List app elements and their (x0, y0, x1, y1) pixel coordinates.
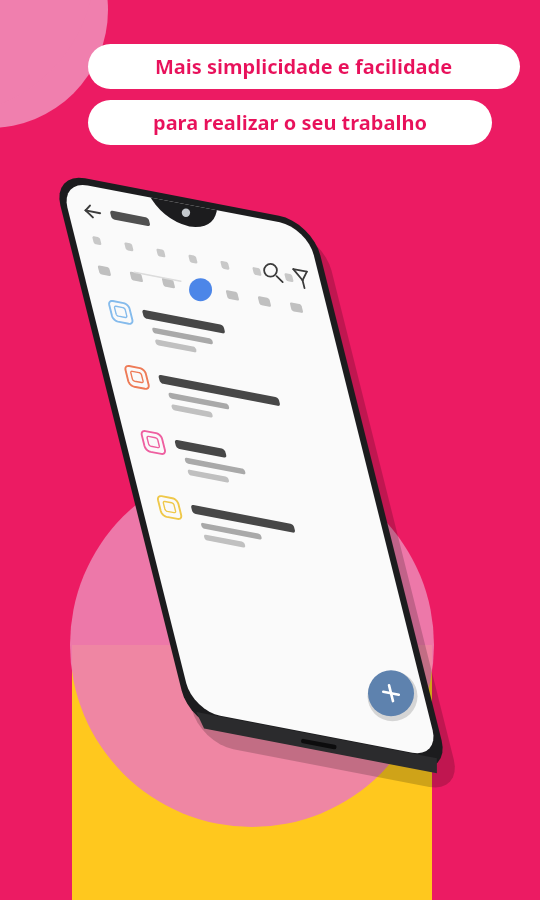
staticText: para realizar o seu trabalho (153, 109, 427, 136)
button[interactable]: para realizar o seu trabalho (88, 100, 492, 145)
staticText: Mais simplicidade e facilidade (155, 53, 453, 80)
button[interactable]: Mais simplicidade e facilidade (88, 44, 520, 89)
